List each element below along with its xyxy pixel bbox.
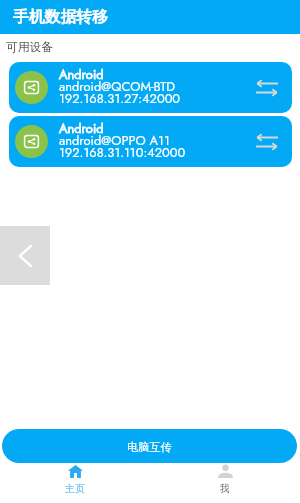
button[interactable]: 我 xyxy=(150,463,300,503)
button[interactable]: Open drawer xyxy=(0,226,50,285)
staticText: 可用设备 xyxy=(6,40,54,55)
other: Transfer xyxy=(256,80,278,96)
staticText: Android android@QCOM-BTD 192.168.31.27:4… xyxy=(59,65,181,108)
staticText: 主页 xyxy=(65,482,85,495)
other: Transfer xyxy=(256,134,278,150)
staticText: 手机数据转移 xyxy=(13,7,108,27)
button[interactable]: Android android@QCOM-BTD 192.168.31.27:4… xyxy=(9,62,292,113)
staticText: 电脑互传 xyxy=(127,440,172,454)
staticText: Android android@OPPO A11 192.168.31.110:… xyxy=(59,119,186,162)
button[interactable]: 电脑互传 xyxy=(2,429,297,463)
staticText: 我 xyxy=(220,482,230,495)
button[interactable]: 主页 xyxy=(0,463,150,503)
button[interactable]: Android android@OPPO A11 192.168.31.110:… xyxy=(9,116,292,167)
